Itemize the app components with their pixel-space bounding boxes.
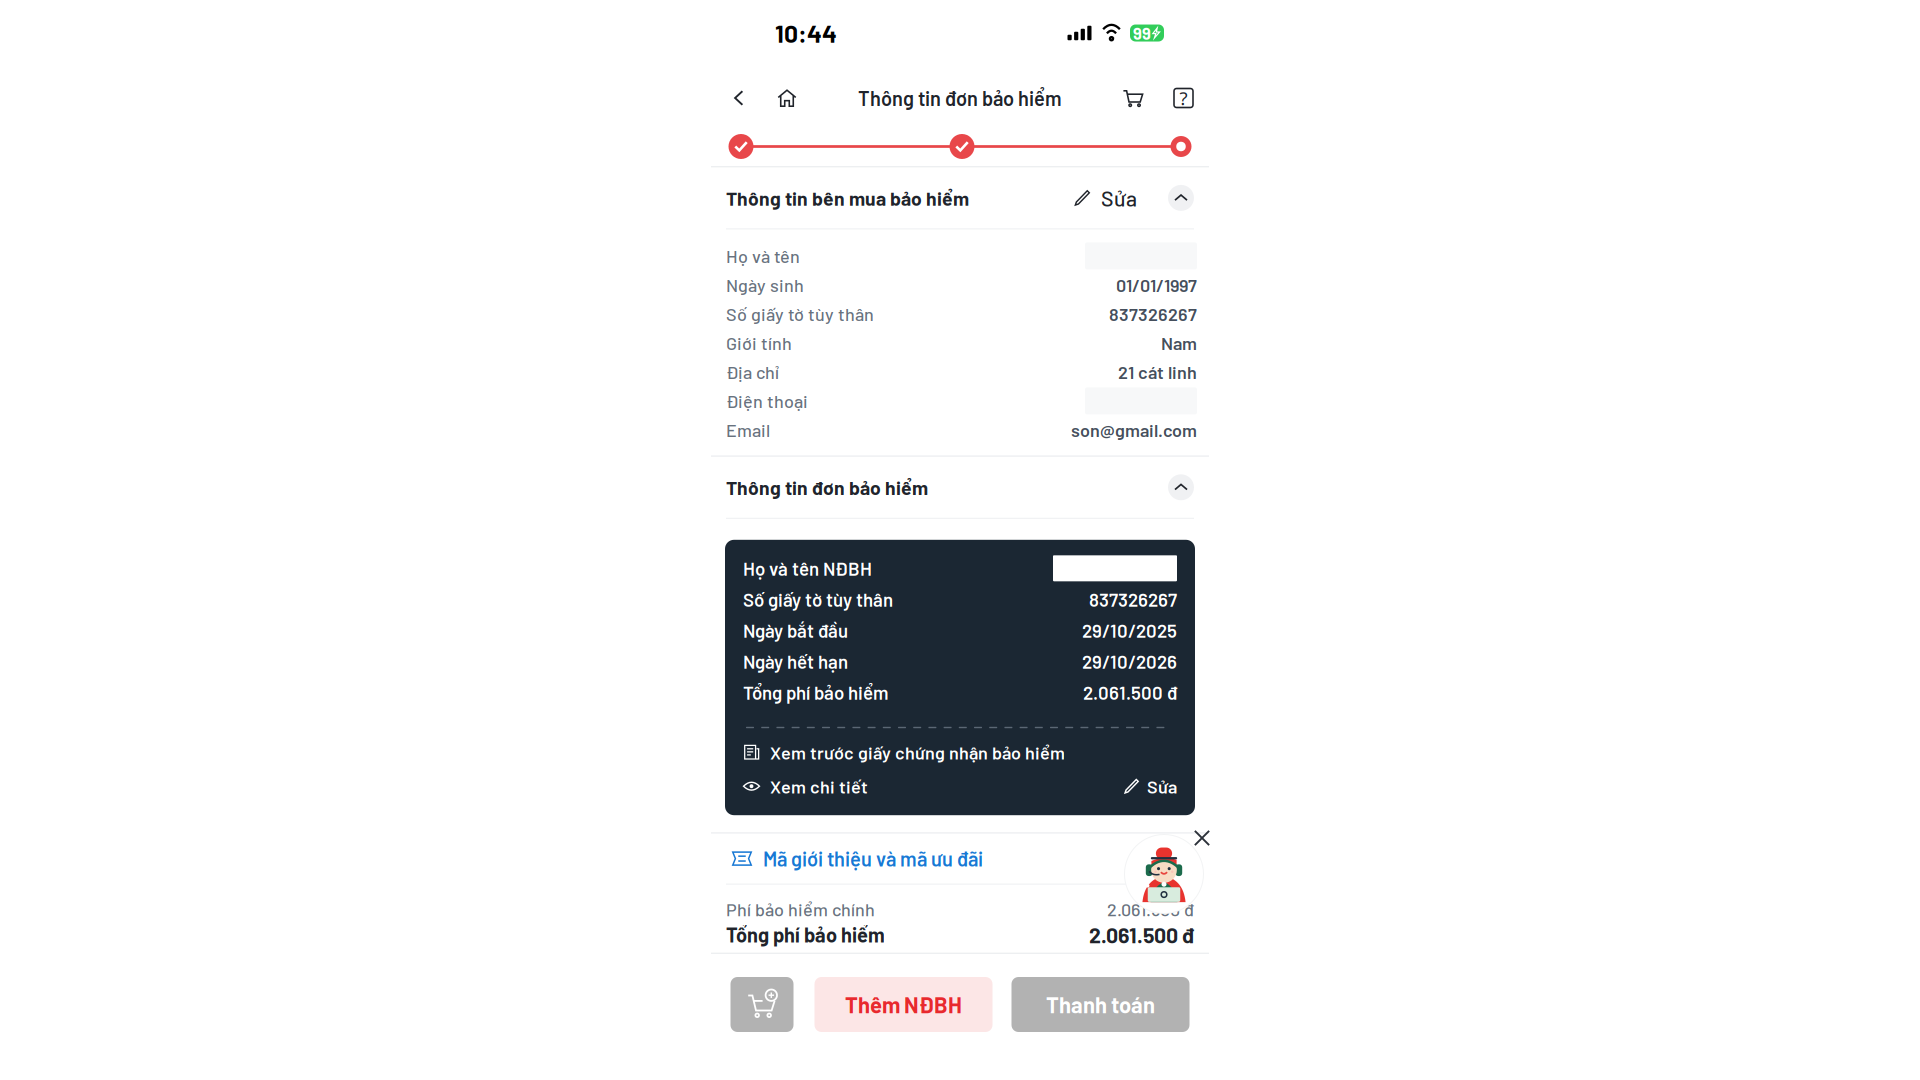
staticText: Mã giới thiệu và mã ưu đãi [763, 847, 983, 871]
staticText: 10:44 [775, 18, 837, 48]
staticText: Giới tính [726, 332, 792, 354]
button[interactable]: Cart [1099, 78, 1167, 118]
staticText: Điện thoại [726, 390, 808, 412]
staticText: Sửa [1101, 185, 1137, 211]
button[interactable]: Sửa [1124, 771, 1177, 801]
staticText: Ngày sinh [726, 274, 804, 296]
staticText: 2.061.500 đ [1083, 681, 1177, 703]
button[interactable]: Thông tin đơn bảo hiểm [711, 457, 1209, 518]
staticText: Thanh toán [1046, 991, 1155, 1018]
staticText: 837326267 [1089, 588, 1177, 610]
staticText: 99 [1133, 23, 1151, 43]
staticText: 21 cát linh [1118, 361, 1197, 383]
button[interactable]: Xem chi tiết [743, 771, 868, 801]
staticText: Xem chi tiết [770, 775, 868, 797]
button[interactable]: Add to cart [730, 977, 793, 1032]
staticText: Họ và tên NĐBH [743, 557, 872, 579]
staticText: Tổng phí bảo hiểm [726, 923, 885, 947]
staticText: Sửa [1147, 775, 1177, 797]
staticText: 2.061.500 đ [1107, 898, 1194, 920]
staticText: Thêm NĐBH [845, 991, 962, 1018]
staticText: Ngày bắt đầu [743, 619, 848, 641]
button[interactable]: Home [757, 78, 817, 118]
button[interactable]: Thêm NĐBH [814, 977, 992, 1032]
staticText: Thông tin đơn bảo hiểm [858, 86, 1062, 110]
staticText: Xem trước giấy chứng nhận bảo hiểm [770, 741, 1065, 763]
button[interactable]: Close support chat [1189, 825, 1215, 851]
staticText: 837326267 [1109, 303, 1197, 325]
staticText: Địa chỉ [726, 361, 779, 383]
button[interactable]: Xem trước giấy chứng nhận bảo hiểm [743, 737, 1177, 767]
staticText: Ngày hết hạn [743, 650, 848, 672]
staticText: 29/10/2026 [1082, 650, 1177, 672]
staticText: 01/01/1997 [1116, 274, 1197, 296]
staticText: Tổng phí bảo hiểm [743, 681, 888, 703]
staticText: Thông tin bên mua bảo hiểm [726, 186, 969, 209]
staticText: Số giấy tờ tùy thân [726, 303, 874, 325]
button[interactable]: Help [1167, 78, 1200, 118]
staticText: son@gmail.com [1071, 419, 1197, 441]
button[interactable]: Mã giới thiệu và mã ưu đãi [711, 834, 1209, 884]
button[interactable]: Thông tin bên mua bảo hiểm [711, 167, 1209, 228]
button[interactable]: Thanh toán [1011, 977, 1189, 1032]
staticText: Thông tin đơn bảo hiểm [726, 476, 928, 499]
staticText: 2.061.500 đ [1089, 922, 1194, 947]
staticText: Nam [1161, 332, 1197, 354]
staticText: 29/10/2025 [1082, 619, 1177, 641]
staticText: Số giấy tờ tùy thân [743, 588, 893, 610]
staticText: Họ và tên [726, 245, 800, 267]
button[interactable]: Chat with support [1124, 834, 1204, 914]
staticText: Phí bảo hiểm chính [726, 898, 875, 920]
staticText: ? [1179, 86, 1187, 110]
button[interactable]: Back [721, 78, 757, 118]
staticText: Email [726, 419, 770, 441]
